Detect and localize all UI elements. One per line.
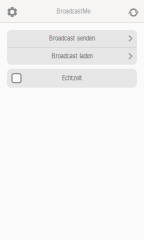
button[interactable]: Echtzeit — [7, 69, 137, 88]
button[interactable]: Broadcast laden — [7, 48, 137, 65]
button[interactable]: Settings — [0, 0, 24, 22]
button[interactable]: Broadcast senden — [7, 30, 137, 47]
button[interactable]: Refresh — [120, 0, 144, 22]
staticText: Broadcast senden — [49, 35, 95, 42]
staticText: BroadcastMe — [56, 8, 90, 15]
staticText: Broadcast laden — [51, 53, 92, 60]
staticText: Echtzeit — [62, 75, 82, 82]
